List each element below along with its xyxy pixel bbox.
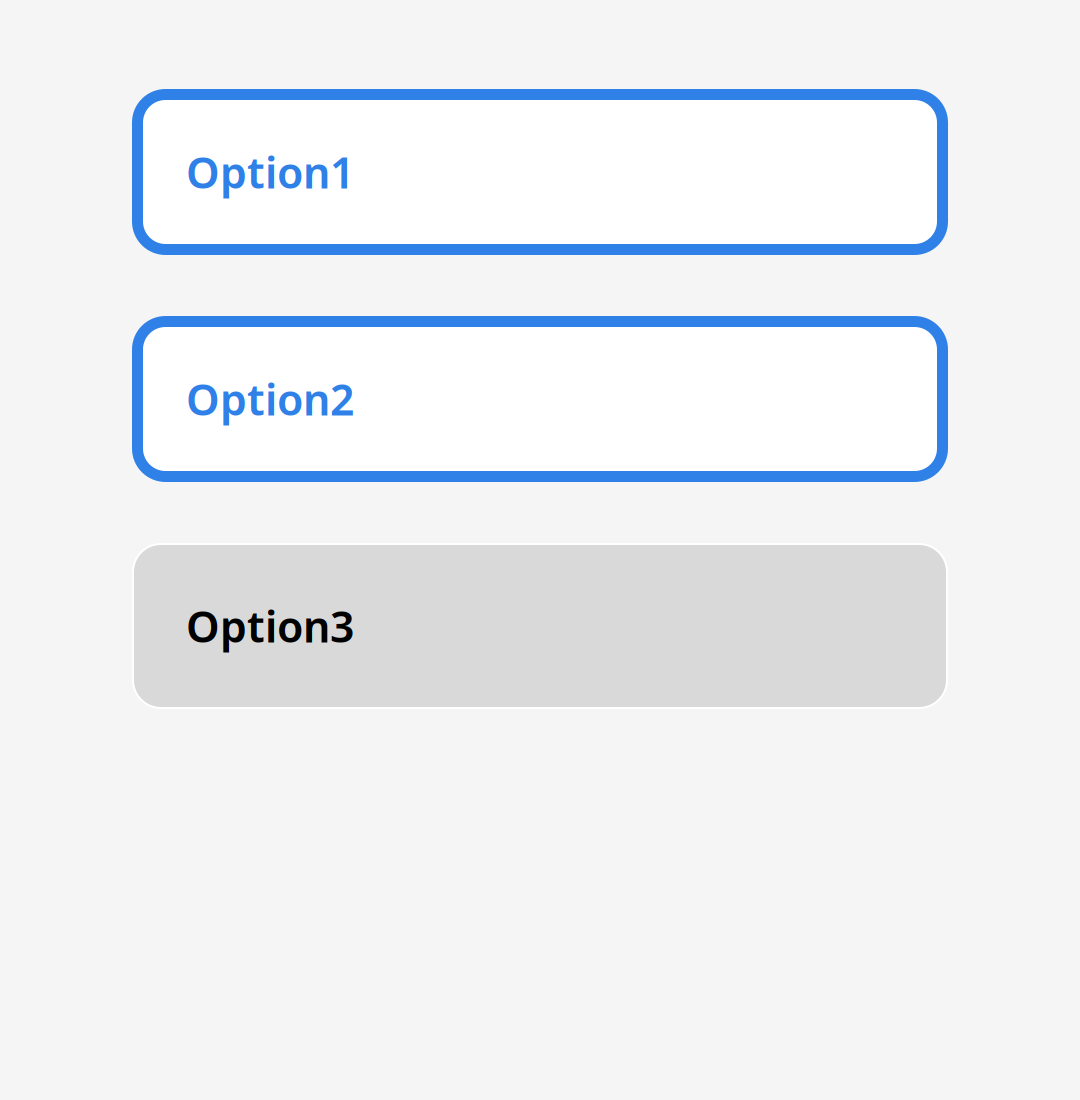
button[interactable]: Option2 <box>132 316 948 482</box>
staticText: Option2 <box>186 370 354 428</box>
button[interactable]: Option1 <box>132 89 948 255</box>
staticText: Option3 <box>186 597 354 655</box>
staticText: Option1 <box>186 143 354 201</box>
button[interactable]: Option3 <box>132 543 948 709</box>
